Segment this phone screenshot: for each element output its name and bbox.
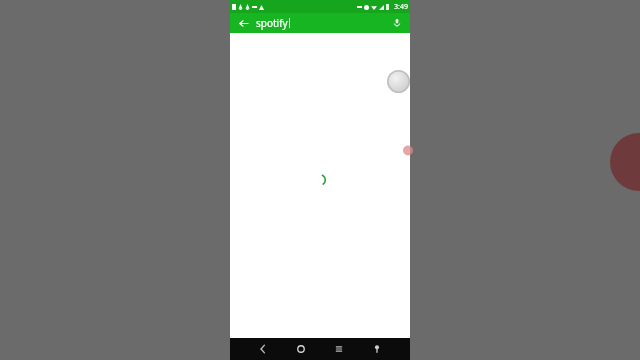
staticText: 3:49 xyxy=(394,2,408,12)
button[interactable]: Back xyxy=(236,16,250,30)
staticText: spotify xyxy=(256,16,288,30)
button[interactable]: Floating bubble xyxy=(387,70,410,93)
button[interactable]: spotify xyxy=(256,16,390,30)
button[interactable]: Home xyxy=(292,340,310,358)
button[interactable]: Location xyxy=(368,340,386,358)
button[interactable]: Voice search xyxy=(390,16,404,30)
button[interactable]: Recent apps xyxy=(330,340,348,358)
button[interactable]: Back xyxy=(254,340,272,358)
